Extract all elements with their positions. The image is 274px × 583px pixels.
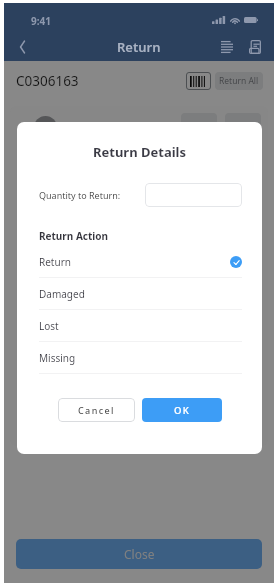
button[interactable] (145, 183, 242, 207)
staticText: Return Details (17, 143, 262, 161)
button[interactable]: OK (142, 398, 222, 422)
staticText: Lost (39, 319, 59, 333)
staticText: OK (174, 404, 191, 417)
staticText: Damaged (39, 287, 85, 301)
button[interactable]: Close (16, 539, 262, 569)
button[interactable]: Receipt (245, 37, 265, 57)
button[interactable]: Return (39, 246, 242, 278)
button[interactable]: Cancel (58, 398, 135, 422)
staticText: Missing (39, 351, 76, 365)
staticText: Return Action (39, 229, 109, 243)
button[interactable]: Scan barcode (186, 72, 211, 90)
button[interactable]: Missing (39, 342, 242, 374)
button[interactable]: Damaged (39, 278, 242, 310)
staticText: Quantity to Return: (39, 189, 121, 201)
staticText: 9:41 (31, 14, 51, 28)
staticText: Close (124, 546, 155, 562)
staticText: Return (117, 38, 161, 56)
button[interactable]: Lost (39, 310, 242, 342)
staticText: C0306163 (16, 72, 79, 90)
staticText: Return (39, 255, 71, 269)
staticText: Return All (219, 75, 259, 87)
button[interactable]: Return All (215, 72, 263, 90)
staticText: Cancel (78, 404, 115, 416)
button[interactable]: List view (217, 37, 237, 57)
button[interactable]: Back (12, 36, 34, 58)
